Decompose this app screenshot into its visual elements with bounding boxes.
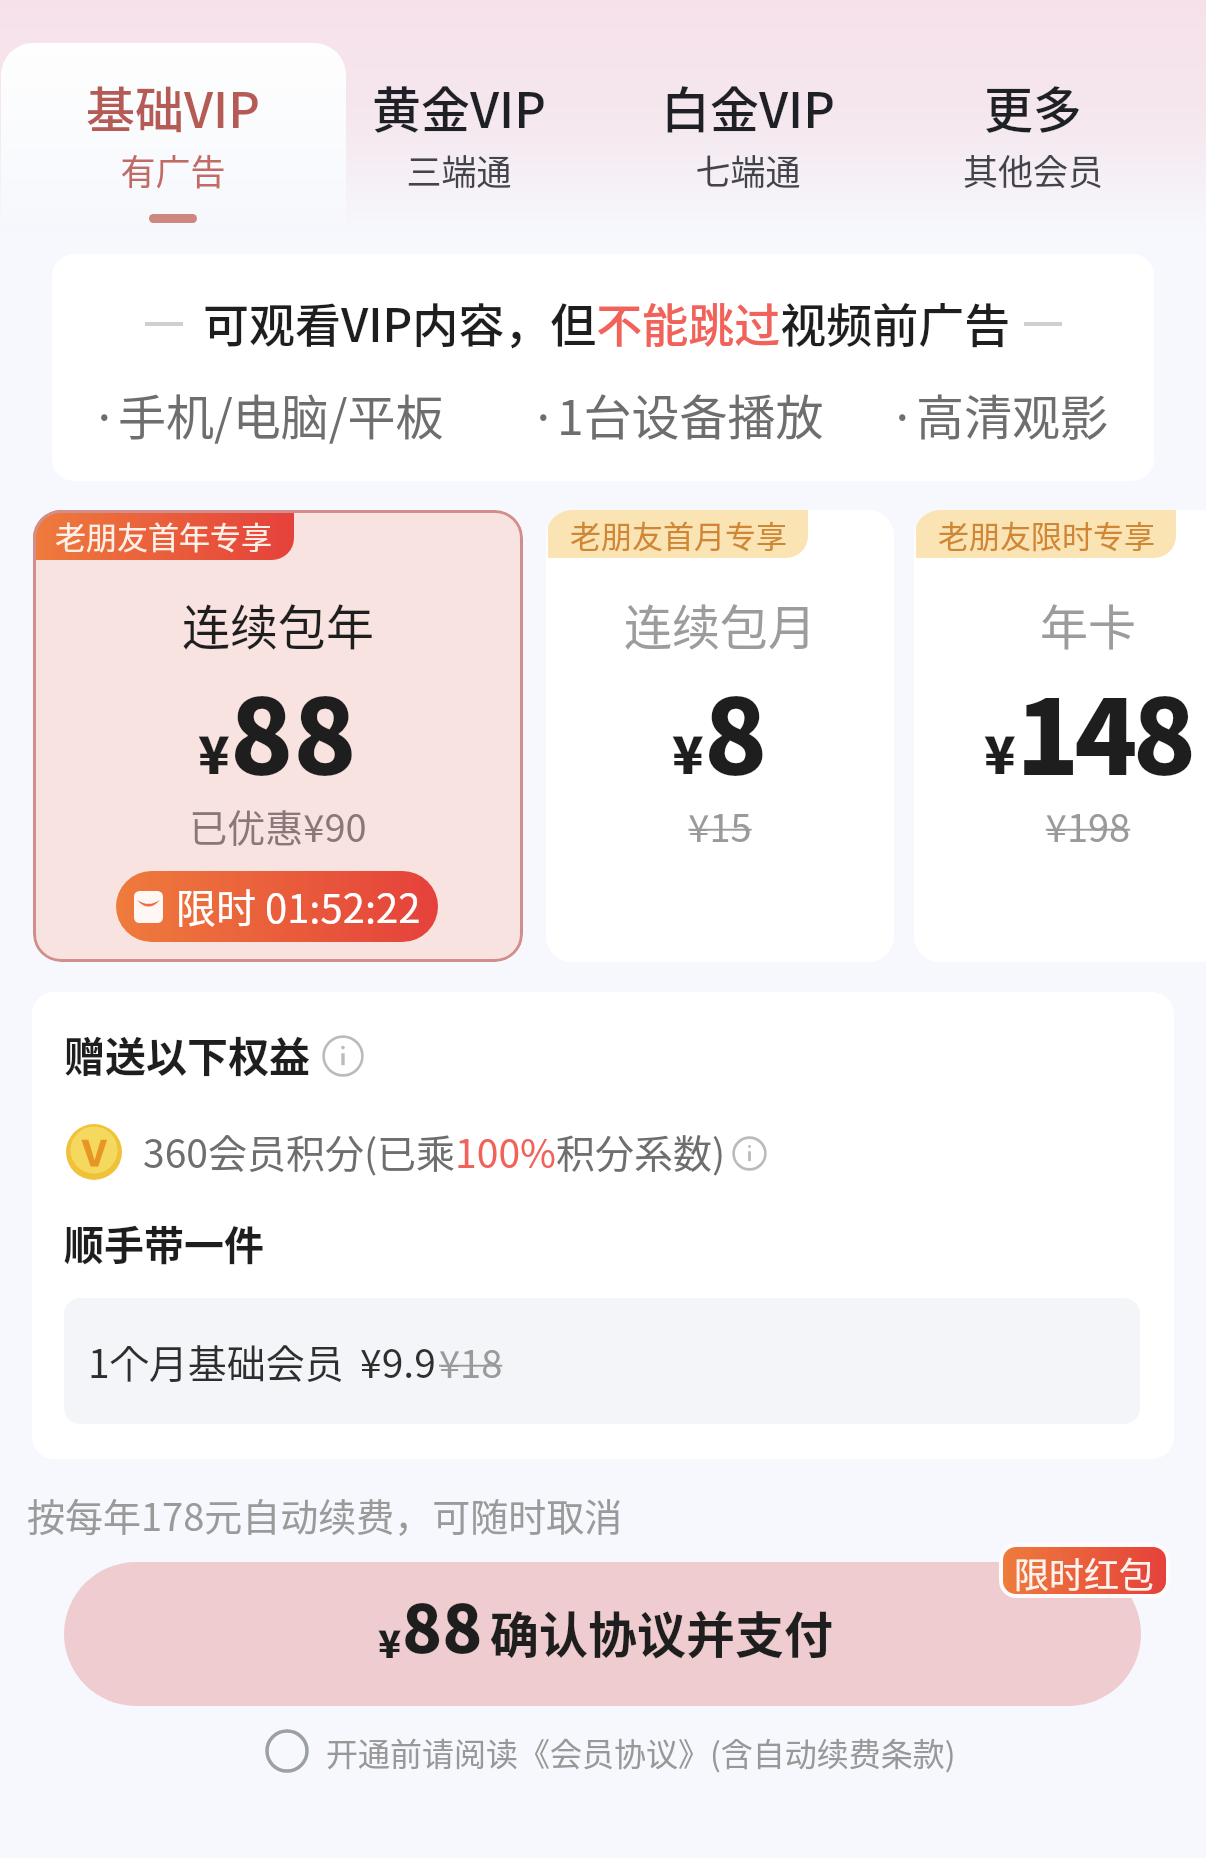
button[interactable]: ¥ bbox=[64, 1562, 1141, 1706]
staticText: 三端通 bbox=[316, 144, 602, 195]
staticText: 赠送以下权益 bbox=[64, 1024, 310, 1083]
button[interactable]: 更多 bbox=[890, 42, 1176, 224]
staticText: 基础VIP bbox=[30, 71, 316, 142]
staticText: 88 bbox=[402, 1576, 483, 1672]
staticText: 360会员积分(已乘100%积分系数) bbox=[143, 1123, 726, 1179]
staticText: 其他会员 bbox=[890, 144, 1176, 195]
button[interactable]: 同意会员协议 bbox=[265, 1729, 309, 1773]
staticText: 连续包月 bbox=[546, 589, 894, 659]
button[interactable]: 关于会员积分的说明 bbox=[732, 1136, 767, 1171]
button[interactable]: 1个月基础会员 bbox=[64, 1298, 1140, 1424]
button[interactable]: 黄金VIP bbox=[316, 42, 602, 224]
staticText: 开通前请阅读《会员协议》(含自动续费条款) bbox=[326, 1729, 956, 1775]
staticText: 8 bbox=[704, 654, 768, 805]
staticText: 148 bbox=[1016, 654, 1192, 805]
staticText: 更多 bbox=[890, 71, 1176, 142]
staticText: 按每年178元自动续费，可随时取消 bbox=[27, 1487, 623, 1542]
staticText: 老朋友首年专享 bbox=[55, 513, 272, 558]
staticText: 年卡 bbox=[914, 589, 1206, 659]
staticText: 确认协议并支付 bbox=[490, 1596, 834, 1667]
staticText: ¥15 bbox=[546, 798, 894, 853]
staticText: ·高清观影 bbox=[889, 379, 1108, 449]
staticText: 七端通 bbox=[605, 144, 891, 195]
staticText: ¥ bbox=[672, 714, 704, 789]
staticText: 限时 01:52:22 bbox=[176, 877, 421, 935]
button[interactable]: 老朋友首年专享 bbox=[33, 510, 523, 962]
staticText: ¥9.9 bbox=[360, 1333, 436, 1389]
staticText: 88 bbox=[230, 654, 357, 805]
staticText: 黄金VIP bbox=[316, 71, 602, 142]
staticText: ¥ bbox=[378, 1614, 402, 1669]
button[interactable]: 基础VIP bbox=[30, 42, 316, 224]
staticText: 可观看VIP内容，但不能跳过视频前广告 bbox=[203, 289, 1011, 356]
staticText: 已优惠¥90 bbox=[33, 798, 523, 853]
button[interactable]: 关于赠送权益的说明 bbox=[322, 1035, 364, 1077]
staticText: 老朋友限时专享 bbox=[938, 512, 1155, 557]
staticText: 连续包年 bbox=[33, 589, 523, 659]
staticText: 有广告 bbox=[30, 144, 316, 195]
staticText: ¥198 bbox=[914, 798, 1206, 853]
staticText: 限时红包 bbox=[1014, 1547, 1155, 1594]
button[interactable]: 老朋友限时专享 bbox=[914, 510, 1206, 962]
staticText: ¥ bbox=[984, 714, 1016, 789]
staticText: 白金VIP bbox=[605, 71, 891, 142]
staticText: 1个月基础会员 bbox=[88, 1333, 344, 1389]
button[interactable]: 白金VIP bbox=[605, 42, 891, 224]
button[interactable]: 开通前请阅读《会员协议》(含自动续费条款) bbox=[326, 1729, 956, 1775]
staticText: ¥18 bbox=[439, 1334, 503, 1389]
staticText: 老朋友首月专享 bbox=[570, 512, 787, 557]
staticText: 顺手带一件 bbox=[64, 1214, 264, 1272]
staticText: ·1台设备播放 bbox=[530, 379, 824, 449]
staticText: ¥ bbox=[198, 714, 230, 789]
staticText: ·手机/电脑/平板 bbox=[91, 379, 444, 449]
button[interactable]: 老朋友首月专享 bbox=[546, 510, 894, 962]
